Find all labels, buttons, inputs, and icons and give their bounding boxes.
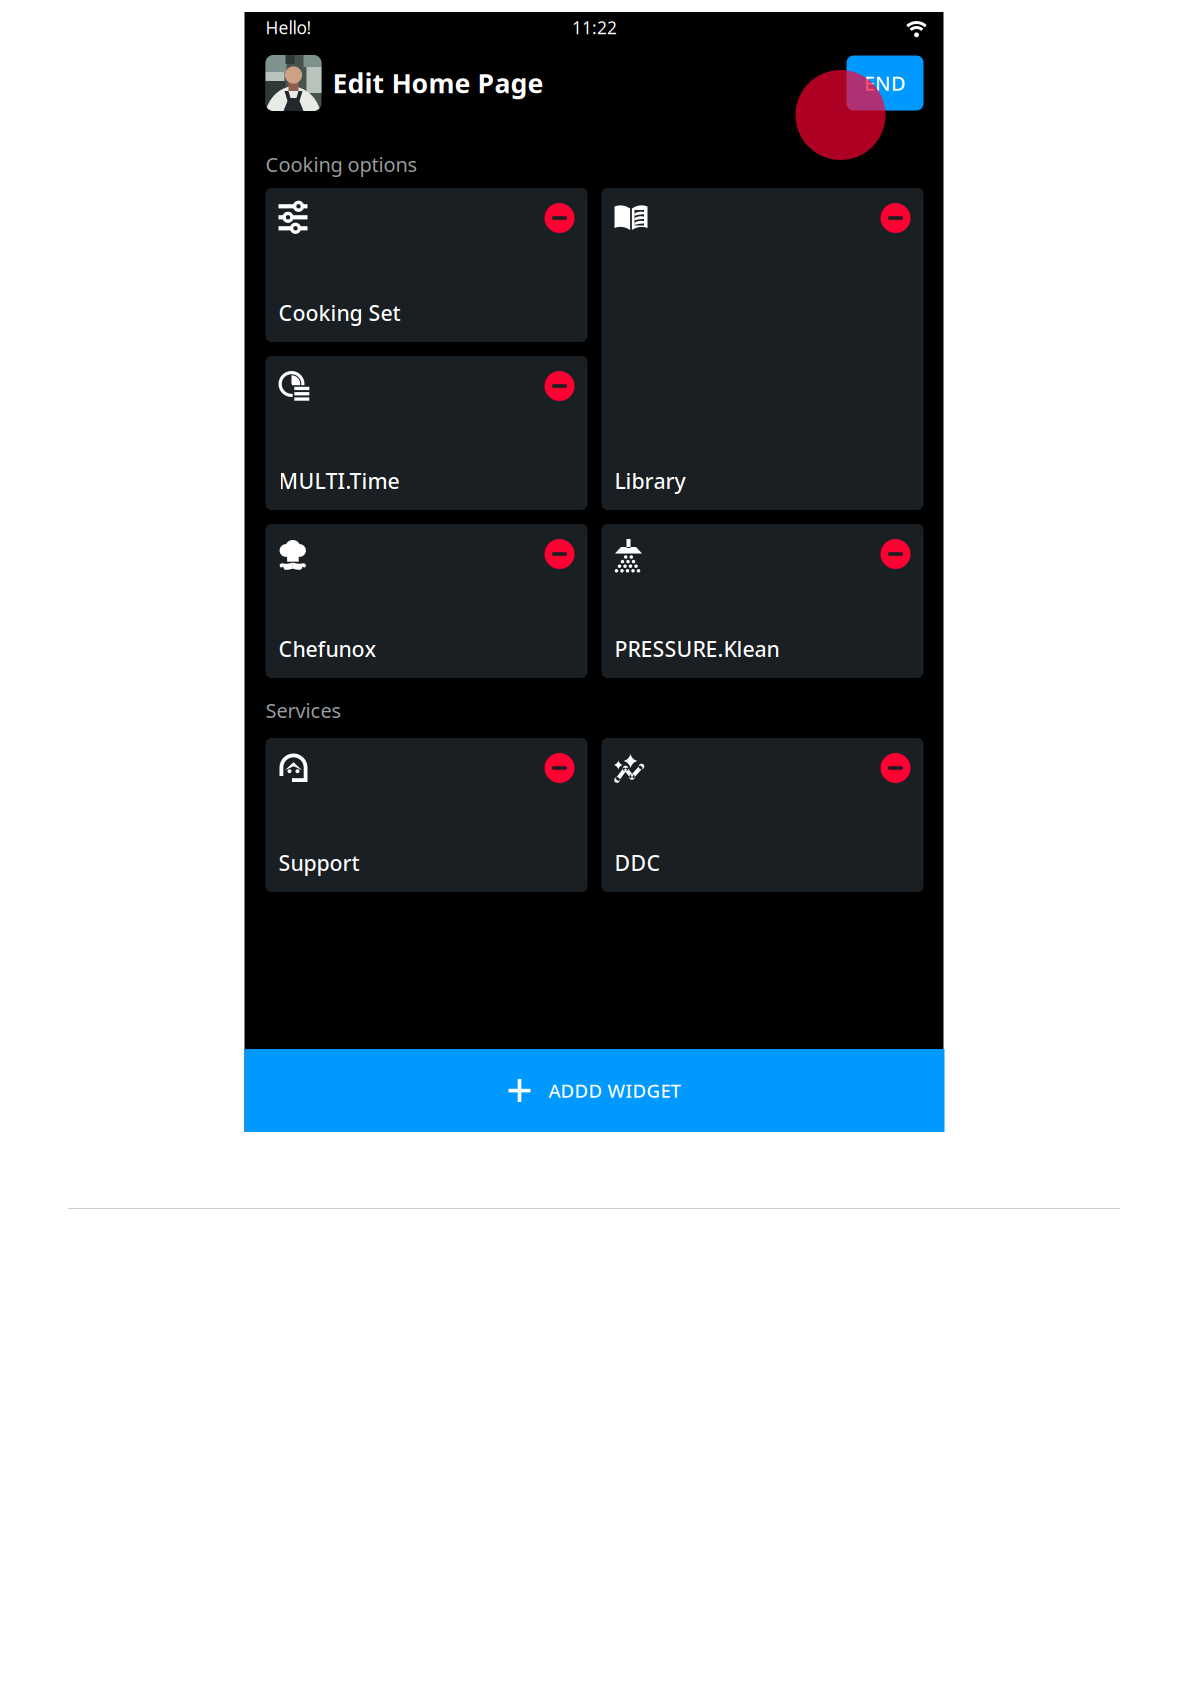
staticText: Support [278,849,359,877]
button[interactable]: DDC [601,738,923,892]
button[interactable]: MULTI.Time [265,356,587,510]
staticText: Edit Home Page [332,65,543,101]
staticText: Services [265,697,341,724]
staticText: Chefunox [278,635,376,663]
staticText: 11:22 [572,16,617,39]
staticText: Cooking options [265,151,417,178]
button[interactable]: Remove widget [880,539,910,569]
button[interactable]: Remove widget [544,203,574,233]
button[interactable]: Cooking Set [265,188,587,342]
staticText: ADDD WIDGET [548,1078,680,1103]
button[interactable]: Remove widget [544,371,574,401]
button[interactable]: Chefunox [265,524,587,678]
staticText: Library [614,467,685,495]
button[interactable]: Support [265,738,587,892]
staticText: END [864,70,906,96]
button[interactable]: Remove widget [880,753,910,783]
staticText: Cooking Set [278,299,400,327]
button[interactable]: Library [601,188,923,510]
button[interactable]: Remove widget [880,203,910,233]
staticText: Hello! [265,16,311,39]
button[interactable]: ADDD WIDGET [244,1049,944,1132]
staticText: DDC [614,849,660,877]
button[interactable]: Remove widget [544,753,574,783]
staticText: PRESSURE.Klean [614,635,779,663]
button[interactable]: PRESSURE.Klean [601,524,923,678]
staticText: MULTI.Time [278,467,399,495]
button[interactable]: Remove widget [544,539,574,569]
button[interactable]: END [846,55,923,110]
